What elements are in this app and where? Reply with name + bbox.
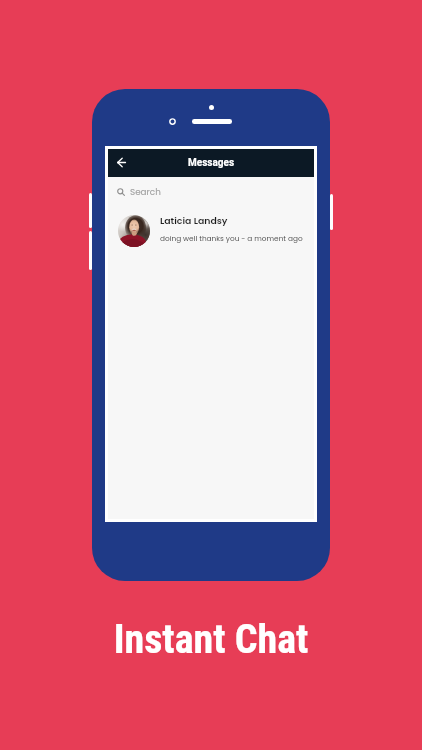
button[interactable]: Search — [108, 179, 314, 205]
staticText: Search — [130, 186, 161, 198]
button[interactable]: Laticia Landsy — [108, 207, 314, 255]
button[interactable]: Back — [112, 153, 130, 171]
staticText: doing well thanks you - a moment ago — [160, 233, 303, 243]
staticText: Instant Chat — [0, 616, 422, 663]
staticText: Laticia Landsy — [160, 214, 228, 227]
staticText: Messages — [188, 157, 235, 169]
